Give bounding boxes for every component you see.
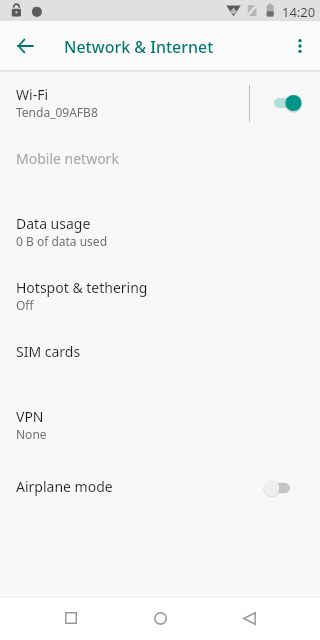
button[interactable]: Back xyxy=(4,21,46,70)
staticText: Hotspot & tethering xyxy=(16,278,148,297)
staticText: Tenda_09AFB8 xyxy=(16,104,98,120)
staticText: Wi-Fi xyxy=(16,85,49,104)
button[interactable]: Recent apps xyxy=(47,596,95,640)
button[interactable]: Back xyxy=(225,596,273,640)
button[interactable]: Mobile network xyxy=(0,133,320,181)
staticText: Data usage xyxy=(16,214,91,233)
button[interactable]: VPN xyxy=(0,391,320,447)
staticText: Mobile network xyxy=(16,149,119,168)
staticText: 0 B of data used xyxy=(16,233,108,249)
button[interactable]: Hotspot & tethering xyxy=(0,262,320,318)
staticText: Airplane mode xyxy=(16,477,113,496)
staticText: SIM cards xyxy=(16,342,81,361)
staticText: Off xyxy=(16,297,34,313)
staticText: 14:20 xyxy=(282,3,316,21)
button[interactable]: Wi-Fi on xyxy=(268,85,312,121)
staticText: None xyxy=(16,426,47,442)
button[interactable]: Data usage xyxy=(0,198,320,254)
button[interactable]: Airplane mode xyxy=(0,461,320,509)
button[interactable]: Airplane mode off xyxy=(259,470,303,506)
button[interactable]: More options xyxy=(280,21,320,70)
button[interactable]: Home xyxy=(136,596,184,640)
button[interactable]: SIM cards xyxy=(0,326,320,374)
staticText: VPN xyxy=(16,407,44,426)
button[interactable]: Wi-Fi xyxy=(0,69,320,125)
staticText: Network & Internet xyxy=(64,36,214,58)
